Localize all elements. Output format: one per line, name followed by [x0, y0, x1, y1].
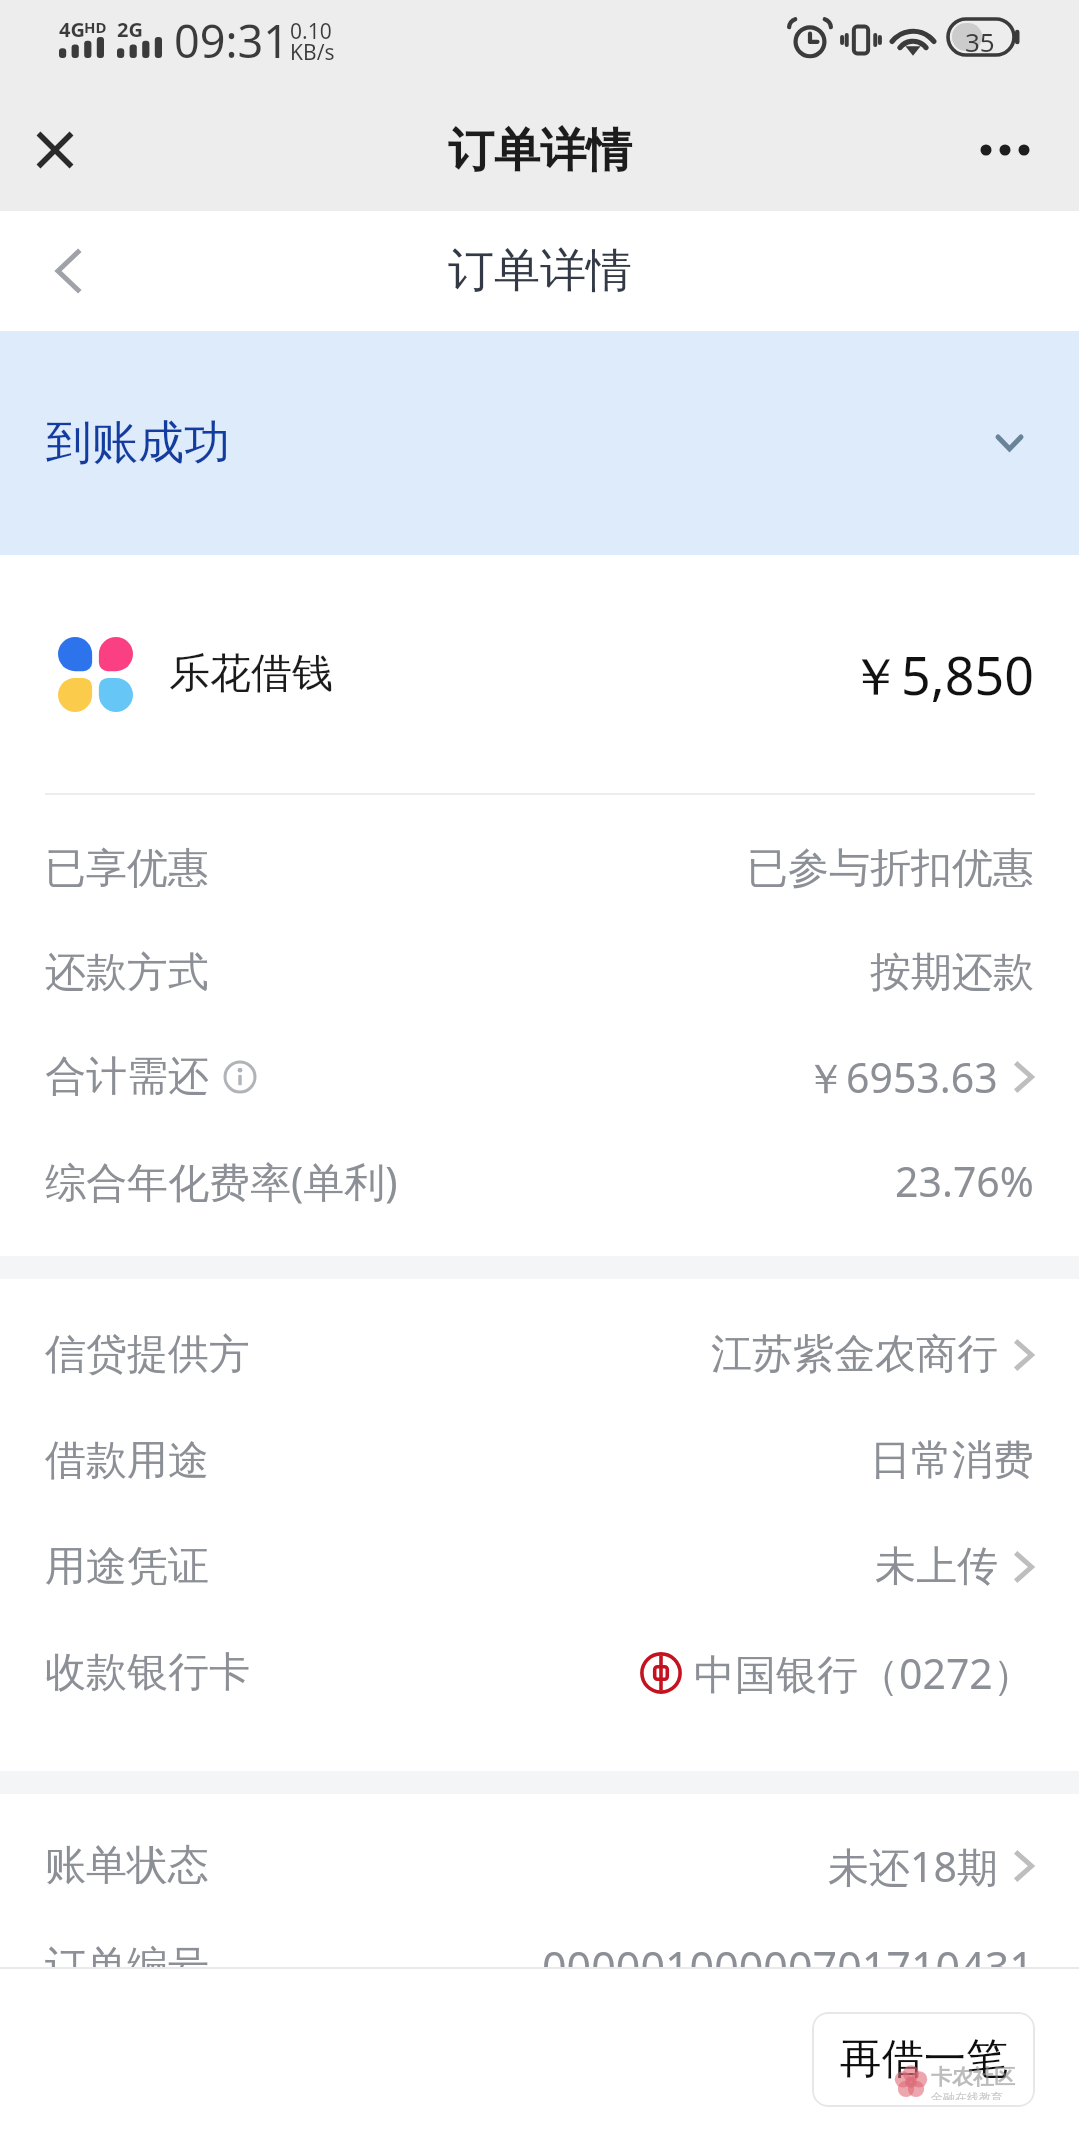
staticText: 订单详情 — [448, 242, 632, 300]
staticText: 再借一笔 — [840, 2033, 1008, 2086]
staticText: ￥6953.63 — [805, 1049, 998, 1105]
staticText: 用途凭证 — [45, 1541, 209, 1593]
staticText: 信贷提供方 — [45, 1329, 250, 1381]
button[interactable]: 再借一笔 — [812, 2012, 1035, 2107]
staticText: 金融在线教育 — [931, 2090, 1003, 2100]
staticText: 09:31 — [174, 10, 290, 71]
button[interactable]: 借款用途 — [0, 1408, 1079, 1514]
staticText: 未还18期 — [828, 1838, 998, 1894]
button[interactable]: 信贷提供方 — [0, 1302, 1079, 1408]
staticText: 未上传 — [875, 1541, 998, 1593]
staticText: 账单状态 — [45, 1840, 209, 1892]
staticText: HD — [84, 17, 107, 37]
button[interactable]: 收款银行卡 — [0, 1620, 1079, 1726]
staticText: 23.76% — [895, 1153, 1034, 1209]
staticText: 合计需还 — [45, 1051, 209, 1103]
button[interactable]: 还款方式 — [0, 921, 1079, 1025]
staticText: 还款方式 — [45, 947, 209, 999]
staticText: 到账成功 — [46, 414, 230, 472]
staticText: 2G — [117, 16, 143, 43]
staticText: 订单详情 — [448, 122, 632, 180]
button[interactable]: Back — [55, 249, 81, 293]
staticText: 日常消费 — [870, 1435, 1034, 1487]
staticText: 乐花借钱 — [169, 648, 333, 700]
button[interactable]: 综合年化费率(单利) — [0, 1129, 1079, 1233]
staticText: 综合年化费率(单利) — [45, 1153, 398, 1209]
staticText: ￥5,850 — [849, 639, 1034, 710]
button[interactable]: 已享优惠 — [0, 817, 1079, 921]
button[interactable]: 订单编号 — [0, 1918, 1079, 2015]
staticText: 按期还款 — [870, 947, 1034, 999]
staticText: 4G — [59, 16, 85, 43]
button[interactable]: Expand — [996, 435, 1023, 451]
staticText: 已享优惠 — [45, 843, 209, 895]
staticText: 已参与折扣优惠 — [747, 843, 1034, 895]
staticText: KB/s — [290, 38, 335, 67]
staticText: 0.10 — [290, 17, 332, 46]
staticText: 收款银行卡 — [45, 1647, 250, 1699]
staticText: 35 — [965, 24, 995, 59]
staticText: 00000100000701710431 — [542, 1937, 1034, 1996]
button[interactable]: More options — [975, 135, 1035, 165]
staticText: 借款用途 — [45, 1435, 209, 1487]
staticText: 江苏紫金农商行 — [711, 1329, 998, 1381]
staticText: 订单编号 — [45, 1941, 209, 1993]
button[interactable]: Close — [33, 128, 77, 172]
button[interactable]: 账单状态 — [0, 1814, 1079, 1918]
button[interactable]: 合计需还 — [0, 1025, 1079, 1129]
staticText: 卡农社区 — [931, 2064, 1015, 2090]
button[interactable]: 用途凭证 — [0, 1514, 1079, 1620]
staticText: 中国银行（0272） — [694, 1645, 1034, 1701]
